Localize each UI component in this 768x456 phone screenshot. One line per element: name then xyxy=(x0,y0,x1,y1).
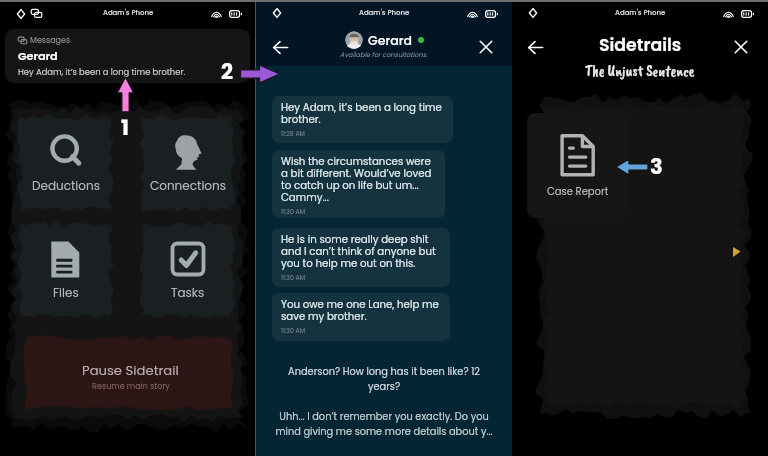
button[interactable]: Case Report xyxy=(527,113,628,218)
staticText: 2 xyxy=(221,57,233,86)
button[interactable]: Close xyxy=(478,39,494,55)
button[interactable]: Wish the circumstances were a bit differ… xyxy=(272,150,445,218)
staticText: 11:30 AM xyxy=(281,326,305,335)
staticText: Deductions xyxy=(32,177,100,194)
button[interactable]: Files xyxy=(18,222,113,318)
staticText: You owe me one Lane, help me save my bro… xyxy=(281,297,444,324)
staticText: Tasks xyxy=(171,284,205,301)
staticText: Resume main story xyxy=(92,380,170,391)
staticText: Available for consultations. xyxy=(340,50,428,59)
staticText: Wish the circumstances were a bit differ… xyxy=(281,154,439,205)
staticText: Pause Sidetrail xyxy=(82,361,179,379)
staticText: Uhh... I don’t remember you exactly. Do … xyxy=(266,410,502,438)
staticText: Adam's Phone xyxy=(359,8,410,18)
button[interactable]: Connections xyxy=(140,115,235,211)
staticText: 11:30 AM xyxy=(281,273,305,282)
staticText: Case Report xyxy=(547,184,609,198)
staticText: 11:28 AM xyxy=(281,129,305,138)
button[interactable]: Back xyxy=(272,39,289,56)
staticText: Connections xyxy=(150,177,226,194)
button[interactable]: Hey Adam, it’s been a long time brother. xyxy=(272,96,453,143)
button[interactable]: Tasks xyxy=(140,222,235,318)
staticText: Sidetrails xyxy=(599,33,682,57)
staticText: 11:30 AM xyxy=(281,207,305,216)
staticText: 1 xyxy=(121,113,129,142)
staticText: Gerard xyxy=(368,32,412,49)
button[interactable]: He is in some really deep shit and I can… xyxy=(272,228,450,287)
staticText: Adam's Phone xyxy=(103,8,154,18)
staticText: Anderson? How long has it been like? 12 … xyxy=(284,365,484,393)
staticText: Files xyxy=(53,284,79,301)
staticText: Messages xyxy=(30,35,71,46)
button[interactable]: Close xyxy=(733,39,749,55)
staticText: 3 xyxy=(650,152,663,181)
button[interactable]: Back xyxy=(527,39,544,56)
staticText: Gerard xyxy=(18,48,58,64)
staticText: The Unjust Sentence xyxy=(585,62,695,81)
button[interactable]: Deductions xyxy=(18,115,113,211)
button[interactable]: Pause Sidetrail xyxy=(25,336,235,410)
button[interactable]: You owe me one Lane, help me save my bro… xyxy=(272,293,450,341)
staticText: Hey Adam, it’s been a long time brother. xyxy=(18,66,186,78)
button[interactable]: Messages xyxy=(5,29,250,83)
staticText: Hey Adam, it’s been a long time brother. xyxy=(281,100,447,127)
staticText: Adam's Phone xyxy=(615,8,666,18)
staticText: He is in some really deep shit and I can… xyxy=(281,232,444,271)
